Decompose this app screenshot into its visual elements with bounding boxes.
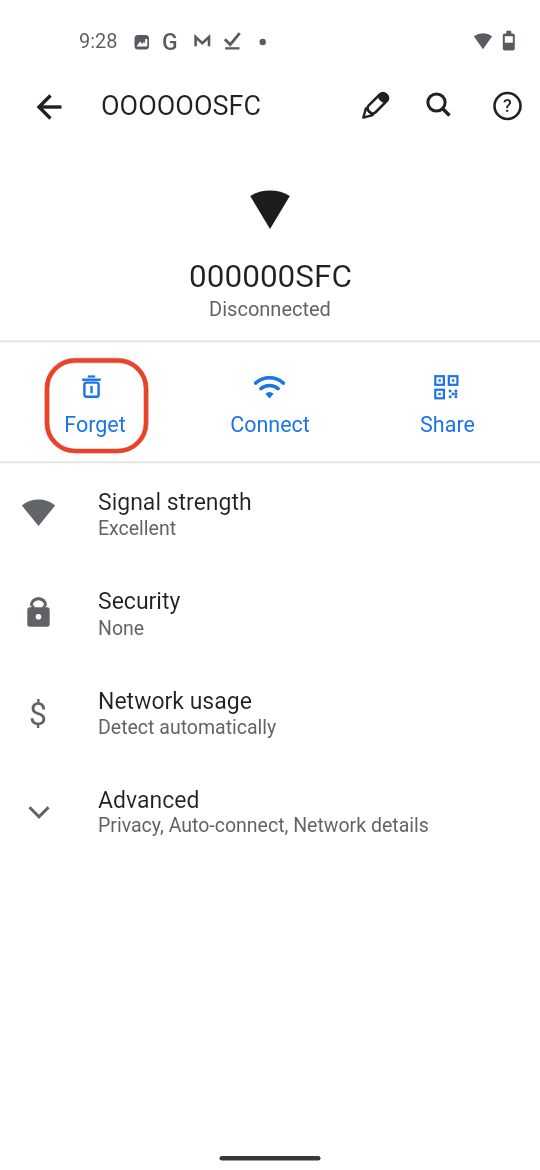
staticText: Connect [230, 412, 310, 437]
staticText: 9:28 [79, 29, 118, 52]
staticText: Forget [64, 412, 126, 437]
staticText: Security [98, 588, 181, 615]
button[interactable] [351, 82, 399, 130]
staticText: None [98, 617, 145, 640]
button[interactable] [386, 360, 506, 451]
staticText: OOOOOOSFC [101, 90, 261, 122]
button[interactable] [0, 660, 540, 760]
staticText: $ [29, 695, 47, 733]
button[interactable] [483, 82, 531, 130]
staticText: Share [420, 412, 475, 437]
staticText: Disconnected [209, 297, 331, 320]
button[interactable] [46, 360, 146, 451]
button[interactable] [0, 760, 540, 860]
staticText: ? [503, 95, 512, 116]
button[interactable] [210, 360, 330, 451]
staticText: Signal strength [98, 489, 252, 516]
staticText: Advanced [98, 787, 200, 814]
staticText: Privacy, Auto-connect, Network details [98, 814, 429, 837]
button[interactable] [416, 82, 464, 130]
button[interactable] [0, 463, 540, 561]
staticText: Excellent [98, 517, 177, 540]
button[interactable] [26, 83, 74, 131]
button[interactable] [0, 561, 540, 660]
staticText: Network usage [98, 688, 252, 715]
staticText: Detect automatically [98, 716, 277, 739]
staticText: G [162, 29, 178, 56]
staticText: 000000SFC [189, 258, 352, 295]
